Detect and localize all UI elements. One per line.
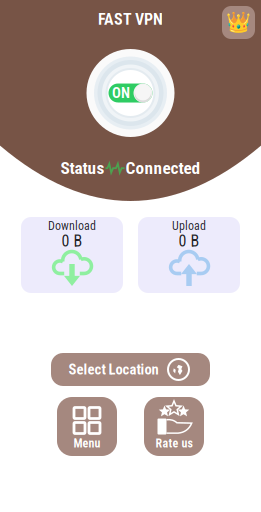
staticText: Rate us xyxy=(155,436,192,451)
staticText: Download xyxy=(48,219,96,233)
staticText: Menu xyxy=(73,436,100,451)
button[interactable]: Menu xyxy=(57,397,117,456)
staticText: 0 B xyxy=(61,232,82,250)
button[interactable]: Rate us xyxy=(144,397,204,456)
staticText: Upload xyxy=(172,219,206,233)
staticText: Select Location xyxy=(68,361,158,378)
staticText: FAST VPN xyxy=(98,10,163,29)
button[interactable]: Premium xyxy=(222,6,255,39)
staticText: 0 B xyxy=(178,232,199,250)
staticText: 👑 xyxy=(226,11,251,34)
button[interactable]: VPN power xyxy=(86,49,174,137)
staticText: Status xyxy=(60,158,104,178)
staticText: ON xyxy=(112,84,130,102)
staticText: Connected xyxy=(125,158,200,178)
button[interactable]: Select Location xyxy=(51,353,210,386)
